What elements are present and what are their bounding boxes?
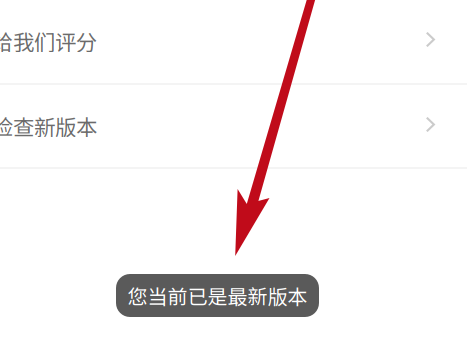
button[interactable]: 检查新版本	[0, 85, 467, 167]
button[interactable]: 给我们评分	[0, 0, 467, 83]
staticText: 检查新版本	[0, 111, 97, 141]
staticText: 您当前已是最新版本	[127, 281, 307, 310]
staticText: 给我们评分	[0, 26, 97, 56]
